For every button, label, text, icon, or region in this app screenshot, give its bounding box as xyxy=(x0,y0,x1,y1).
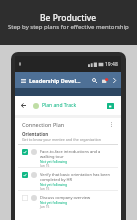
button[interactable]: Search xyxy=(90,76,99,85)
staticText: Not yet following xyxy=(40,159,68,164)
staticText: Get to know your mentee and the organiza… xyxy=(22,137,102,142)
staticText: Jun 15 xyxy=(40,164,50,167)
staticText: Verify that basic orientation has been c… xyxy=(40,172,115,182)
staticText: Discuss company overview xyxy=(40,195,91,200)
staticText: Connection Plan xyxy=(22,121,65,128)
staticText: Not yet following xyxy=(40,200,68,205)
staticText: Orientation xyxy=(22,131,49,137)
staticText: Jun 15 xyxy=(40,205,50,209)
button[interactable]: Notifications xyxy=(100,76,109,85)
button[interactable]: Verify that basic orientation has been c… xyxy=(18,168,118,190)
staticText: Step by step plans for effective mentors… xyxy=(8,23,129,31)
button[interactable]: Menu xyxy=(19,76,28,85)
staticText: Face-to-face introductions and a walking… xyxy=(40,149,115,159)
button[interactable]: Discuss company overview xyxy=(18,191,118,213)
staticText: Not yet following xyxy=(40,182,68,187)
staticText: Plan and Track xyxy=(42,102,77,109)
staticText: Leadership Devel... xyxy=(29,77,81,84)
button[interactable]: Video call xyxy=(107,103,114,109)
button[interactable]: Face-to-face introductions and a walking… xyxy=(18,145,118,167)
button[interactable]: More xyxy=(110,76,118,84)
staticText: 19:48 xyxy=(105,61,118,68)
staticText: Be Productive xyxy=(40,12,97,24)
button[interactable]: Options xyxy=(108,121,115,128)
button[interactable]: Back xyxy=(19,101,28,110)
staticText: Jun 15 xyxy=(40,187,50,190)
